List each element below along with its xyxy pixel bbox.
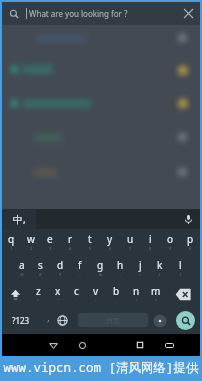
button[interactable]: Period [150,307,170,334]
staticText: h [117,258,124,272]
button[interactable]: r [60,229,80,255]
staticText: ) [180,272,182,277]
button[interactable]: t [80,229,100,255]
staticText: f [78,258,82,272]
button[interactable]: x [48,281,67,307]
staticText: 3 [49,246,52,251]
staticText: What are you looking for ? [29,8,176,19]
staticText: & [99,272,102,277]
staticText: r [68,232,73,246]
staticText: g [97,258,104,272]
staticText: e [47,232,53,246]
staticText: 9 [169,246,172,251]
staticText: ! [136,298,138,303]
staticText: s [38,258,43,272]
staticText: 6 [109,246,112,251]
button[interactable]: Delete [166,281,200,307]
staticText: $ [59,272,62,277]
button[interactable]: e [40,229,60,255]
staticText: w [27,232,35,246]
staticText: * [37,298,40,303]
button[interactable]: q [2,229,21,255]
button[interactable]: Back [42,334,64,356]
staticText: " [57,298,59,303]
button[interactable]: a [12,255,31,281]
staticText: t [88,232,92,246]
button[interactable]: Recents [129,334,151,356]
staticText: i [149,232,152,246]
button[interactable]: y [100,229,120,255]
button[interactable]: z [29,281,48,307]
button[interactable]: b [106,281,126,307]
staticText: a [19,258,25,272]
staticText: o [167,232,174,246]
button[interactable]: p [180,229,200,255]
staticText: y [107,232,113,246]
staticText: # [39,272,42,277]
staticText: d [57,258,64,272]
staticText: 拼音 [106,316,120,325]
staticText: : [95,298,97,303]
staticText: 1 [10,246,13,251]
staticText: u [127,232,134,246]
button[interactable]: c [67,281,86,307]
staticText: ( [159,272,161,277]
staticText: p [187,232,194,246]
staticText: v [93,284,99,298]
button[interactable]: ?123 [2,307,40,334]
button[interactable]: Voice input [176,209,200,229]
staticText: j [139,258,142,272]
staticText: m [151,284,161,298]
button[interactable]: 中, [2,209,36,229]
button[interactable]: Search [176,311,195,330]
staticText: + [139,272,142,277]
button[interactable]: Switch language [52,307,72,334]
button[interactable]: g [90,255,110,281]
button[interactable]: f [70,255,90,281]
staticText: ?123 [12,315,30,326]
staticText: 5 [89,246,92,251]
button[interactable]: u [120,229,140,255]
staticText: 8 [149,246,152,251]
staticText: q [8,232,15,246]
button[interactable]: d [50,255,70,281]
staticText: b [113,284,120,298]
staticText: l [179,258,182,272]
staticText: c [74,284,79,298]
staticText: 7 [129,246,132,251]
staticText: z [36,284,41,298]
staticText: 中, [13,212,26,226]
staticText: www.vipcn.com [清风网络]提供 [3,359,199,376]
button[interactable]: k [150,255,170,281]
button[interactable]: h [110,255,130,281]
staticText: ' [76,298,77,303]
staticText: _ [79,272,81,277]
staticText: 4 [69,246,72,251]
button[interactable]: l [170,255,190,281]
button[interactable]: Hide keyboard [158,334,180,356]
staticText: @ [20,272,24,277]
button[interactable]: o [160,229,180,255]
button[interactable]: i [140,229,160,255]
button[interactable]: s [31,255,50,281]
staticText: - [120,272,122,277]
button[interactable]: n [126,281,146,307]
staticText: k [157,258,163,272]
staticText: ; [116,298,118,303]
button[interactable]: v [86,281,106,307]
button[interactable]: Shift [2,281,29,307]
button[interactable]: j [130,255,150,281]
staticText: 0 [189,246,192,251]
staticText: 2 [30,246,33,251]
staticText: x [55,284,61,298]
button[interactable] [40,307,56,334]
button[interactable]: w [21,229,40,255]
button[interactable]: Home [71,334,93,356]
button[interactable]: m [146,281,166,307]
button[interactable]: Search [2,2,26,25]
staticText: ? [155,298,157,303]
staticText: n [133,284,140,298]
button[interactable]: Close search [176,2,200,25]
